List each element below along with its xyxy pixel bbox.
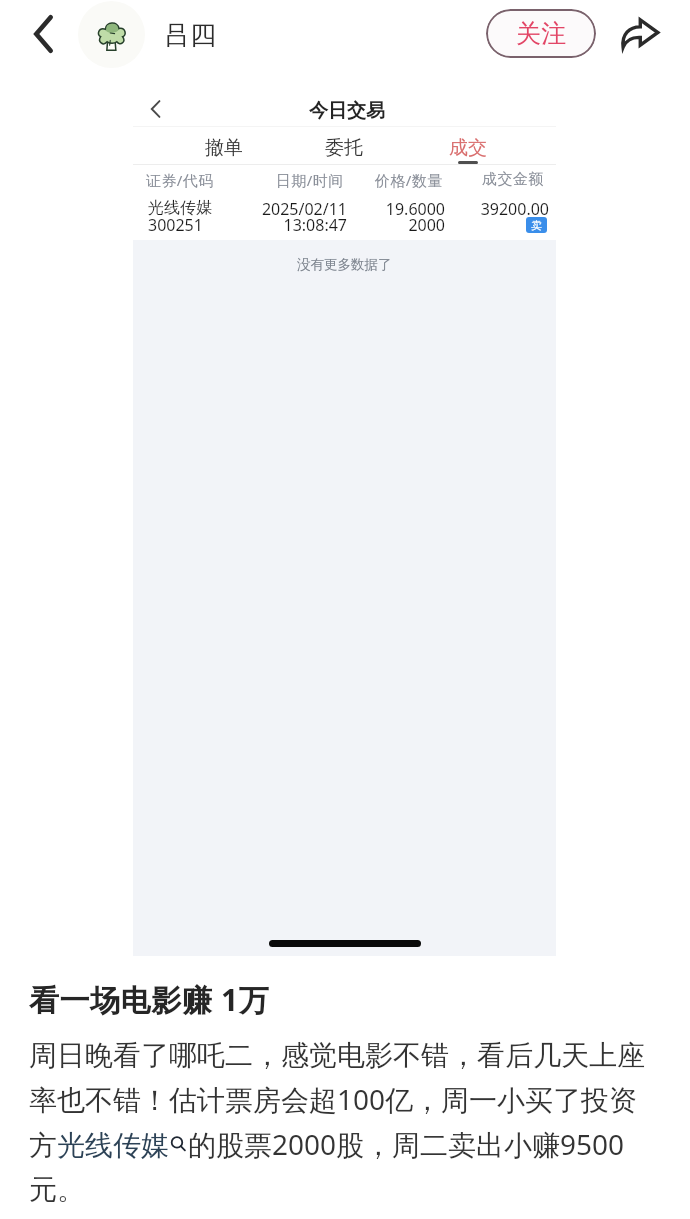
staticText: 13:08:47 bbox=[207, 214, 347, 236]
button[interactable]: Back bbox=[22, 13, 64, 55]
staticText: 2000 bbox=[305, 214, 445, 236]
staticText: 看一场电影赚 1万 bbox=[29, 979, 270, 1020]
staticText: 委托 bbox=[325, 136, 363, 160]
button[interactable]: 委托 bbox=[310, 133, 378, 166]
staticText: 价格/数量 bbox=[375, 170, 443, 190]
staticText: 撤单 bbox=[205, 136, 243, 160]
staticText: 39200.00 bbox=[409, 198, 549, 220]
staticText: 2025/02/11 bbox=[207, 198, 347, 220]
button[interactable]: Share bbox=[615, 10, 663, 54]
staticText: 周日晚看了哪吒二，感觉电影不错，看后几天上座率也不错！估计票房会超100亿，周一… bbox=[29, 1038, 649, 1207]
button[interactable]: 撤单 bbox=[190, 133, 258, 166]
staticText: 成交 bbox=[449, 136, 487, 160]
staticText: 日期/时间 bbox=[276, 170, 344, 190]
staticText: 300251 bbox=[148, 214, 203, 236]
staticText: 证券/代码 bbox=[146, 170, 214, 190]
staticText: 没有更多数据了 bbox=[297, 256, 392, 273]
staticText: 成交金额 bbox=[482, 170, 544, 189]
staticText: 19.6000 bbox=[305, 198, 445, 220]
staticText: 今日交易 bbox=[309, 99, 385, 123]
staticText: 吕四 bbox=[164, 19, 216, 52]
button[interactable]: 成交 bbox=[434, 133, 502, 166]
button[interactable]: 关注 bbox=[486, 9, 596, 58]
staticText: 关注 bbox=[516, 18, 566, 49]
button[interactable] bbox=[78, 1, 145, 68]
button[interactable]: Back bbox=[144, 98, 166, 120]
staticText: 卖 bbox=[531, 218, 542, 232]
staticText: 光线传媒 bbox=[148, 198, 212, 218]
